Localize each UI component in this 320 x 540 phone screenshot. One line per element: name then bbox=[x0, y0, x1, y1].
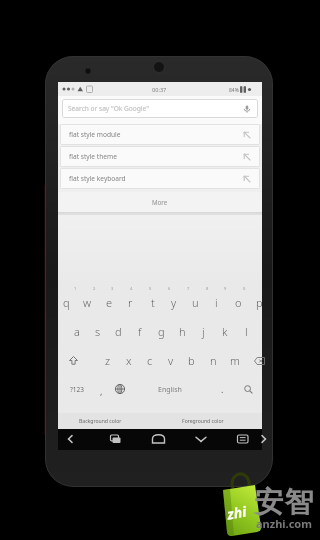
staticText: 84% bbox=[229, 87, 239, 94]
staticText: 3 bbox=[111, 286, 114, 291]
button[interactable]: n bbox=[203, 346, 224, 375]
button[interactable]: l bbox=[236, 317, 257, 346]
staticText: 0 bbox=[243, 286, 246, 291]
staticText: Search or say "Ok Google" bbox=[68, 104, 149, 113]
button[interactable]: x bbox=[118, 346, 139, 375]
button[interactable]: w bbox=[77, 288, 98, 317]
button[interactable]: ?123 bbox=[64, 375, 90, 404]
button[interactable]: b bbox=[181, 346, 202, 375]
staticText: n bbox=[210, 353, 217, 368]
staticText: flat style keyboard bbox=[69, 174, 126, 183]
button[interactable]: h bbox=[172, 317, 193, 346]
staticText: h bbox=[179, 324, 186, 339]
button[interactable]: m bbox=[224, 346, 245, 375]
button[interactable]: flat style module bbox=[60, 124, 260, 145]
button[interactable]: f bbox=[129, 317, 150, 346]
button[interactable]: q bbox=[56, 288, 77, 317]
staticText: y bbox=[171, 295, 177, 310]
button[interactable] bbox=[228, 429, 262, 450]
staticText: More bbox=[152, 198, 168, 206]
button[interactable]: r bbox=[120, 288, 141, 317]
staticText: English bbox=[158, 385, 182, 395]
button[interactable]: o bbox=[228, 288, 249, 317]
button[interactable]: Foreground color bbox=[173, 413, 233, 429]
button[interactable]: c bbox=[139, 346, 160, 375]
staticText: flat style theme bbox=[69, 152, 117, 161]
staticText: d bbox=[115, 324, 122, 339]
staticText: l bbox=[245, 324, 248, 339]
button[interactable]: z bbox=[97, 346, 118, 375]
button[interactable]: i bbox=[206, 288, 227, 317]
button[interactable]: y bbox=[163, 288, 184, 317]
staticText: i bbox=[215, 295, 218, 310]
button[interactable] bbox=[246, 346, 272, 375]
staticText: k bbox=[222, 324, 228, 339]
staticText: , bbox=[100, 385, 103, 397]
staticText: anzhi.com bbox=[256, 516, 312, 531]
staticText: b bbox=[188, 353, 195, 368]
staticText: p bbox=[256, 295, 263, 310]
staticText: 7 bbox=[187, 286, 190, 291]
staticText: . bbox=[221, 383, 224, 395]
staticText: a bbox=[74, 324, 80, 339]
button[interactable]: v bbox=[160, 346, 181, 375]
staticText: c bbox=[147, 353, 153, 368]
staticText: v bbox=[168, 353, 174, 368]
button[interactable]: Background color bbox=[70, 413, 130, 429]
staticText: o bbox=[235, 295, 242, 310]
staticText: g bbox=[158, 324, 165, 339]
staticText: j bbox=[202, 324, 205, 339]
staticText: z bbox=[105, 353, 111, 368]
button[interactable]: g bbox=[151, 317, 172, 346]
staticText: zhi bbox=[225, 501, 248, 524]
button[interactable] bbox=[92, 429, 126, 450]
staticText: 5 bbox=[149, 286, 152, 291]
button[interactable] bbox=[58, 429, 92, 450]
button[interactable]: k bbox=[214, 317, 235, 346]
staticText: 6 bbox=[168, 286, 171, 291]
button[interactable]: p bbox=[249, 288, 270, 317]
button[interactable] bbox=[194, 429, 228, 450]
button[interactable]: More bbox=[58, 192, 262, 212]
button[interactable]: Search or say "Ok Google" bbox=[62, 99, 258, 118]
staticText: 8 bbox=[206, 286, 209, 291]
staticText: e bbox=[106, 295, 113, 310]
staticText: 安智 bbox=[254, 484, 314, 521]
button[interactable] bbox=[60, 346, 86, 375]
staticText: r bbox=[128, 295, 133, 310]
staticText: s bbox=[95, 324, 101, 339]
button[interactable] bbox=[126, 429, 160, 450]
staticText: Foreground color bbox=[182, 418, 224, 425]
staticText: f bbox=[138, 324, 142, 339]
button[interactable]: English bbox=[134, 375, 206, 404]
button[interactable]: t bbox=[142, 288, 163, 317]
button[interactable]: u bbox=[185, 288, 206, 317]
staticText: 4 bbox=[130, 286, 133, 291]
button[interactable]: s bbox=[87, 317, 108, 346]
staticText: Background color bbox=[79, 418, 122, 425]
staticText: t bbox=[151, 295, 155, 310]
staticText: 00:37 bbox=[152, 86, 167, 94]
button[interactable]: d bbox=[108, 317, 129, 346]
staticText: u bbox=[192, 295, 199, 310]
button[interactable] bbox=[160, 429, 194, 450]
staticText: 2 bbox=[93, 286, 96, 291]
staticText: x bbox=[126, 353, 132, 368]
staticText: q bbox=[63, 295, 70, 310]
staticText: flat style module bbox=[69, 130, 121, 139]
staticText: 1 bbox=[74, 286, 77, 291]
button[interactable]: a bbox=[66, 317, 87, 346]
button[interactable]: j bbox=[193, 317, 214, 346]
button[interactable]: flat style keyboard bbox=[60, 168, 260, 189]
button[interactable]: e bbox=[99, 288, 120, 317]
staticText: ?123 bbox=[70, 385, 84, 394]
button[interactable]: flat style theme bbox=[60, 146, 260, 167]
staticText: w bbox=[83, 295, 92, 310]
staticText: 9 bbox=[224, 286, 227, 291]
staticText: m bbox=[230, 353, 240, 368]
